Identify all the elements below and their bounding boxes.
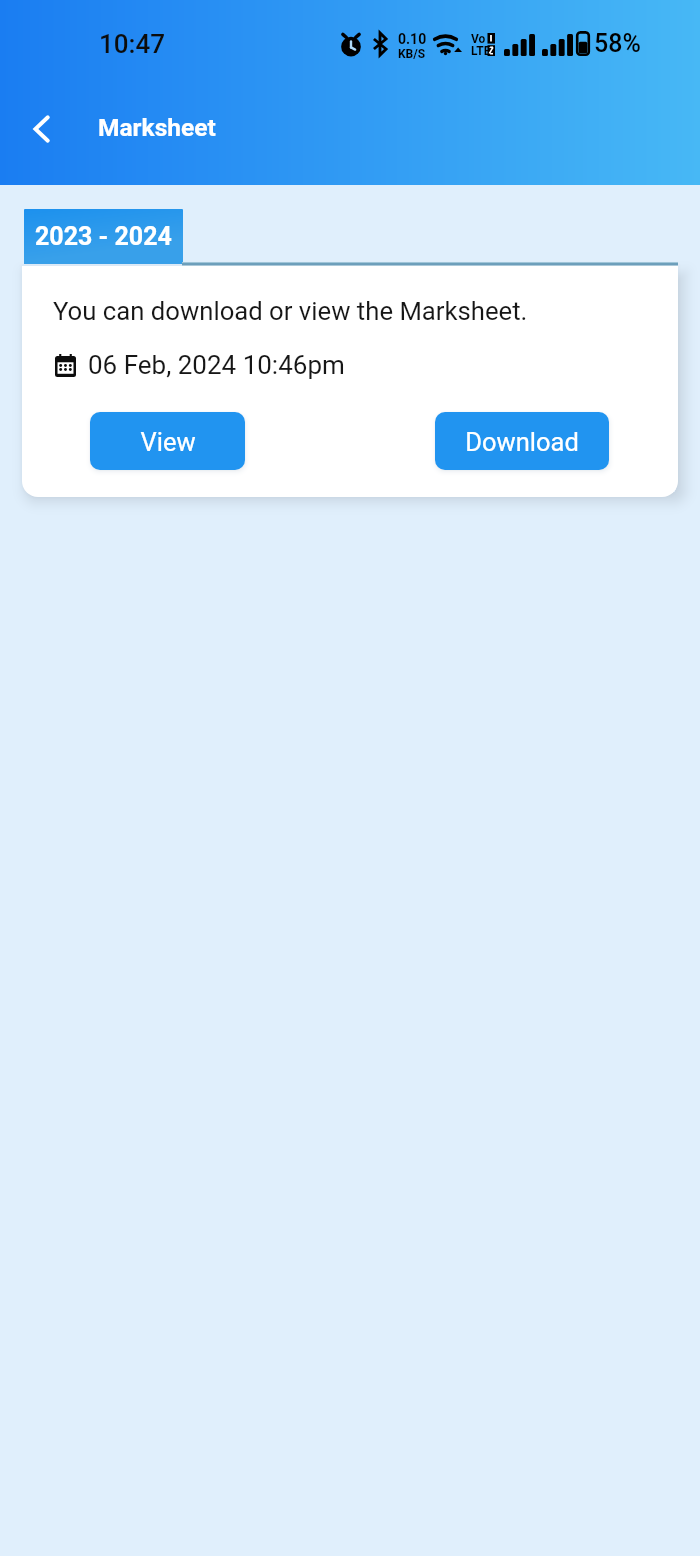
staticText: Marksheet [98, 113, 216, 142]
staticText: 06 Feb, 2024 10:46pm [88, 350, 345, 380]
staticText: Vo [471, 32, 486, 46]
staticText: View [140, 427, 196, 457]
button[interactable]: Back [12, 100, 70, 158]
staticText: 10:47 [99, 29, 166, 59]
button[interactable]: Download [435, 412, 609, 470]
button[interactable]: View [90, 412, 245, 470]
staticText: You can download or view the Marksheet. [53, 296, 528, 326]
staticText: LTE [471, 44, 491, 58]
staticText: KB/S [398, 47, 426, 61]
staticText: 2023 - 2024 [35, 222, 172, 251]
staticText: 58% [594, 29, 641, 58]
staticText: Download [465, 427, 579, 457]
button[interactable]: 2023 - 2024 [24, 209, 183, 264]
staticText: 0.10 [398, 31, 427, 47]
